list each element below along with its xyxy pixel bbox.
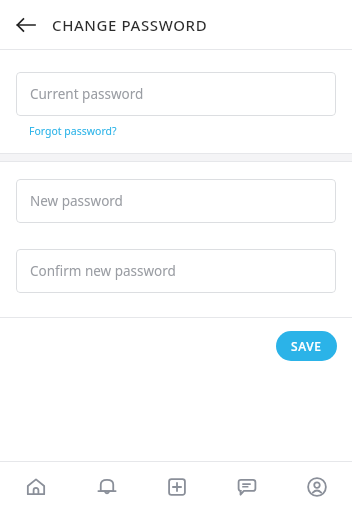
button[interactable]: Create [142,462,212,512]
staticText: New password [30,192,123,210]
button[interactable]: Confirm new password [16,249,336,293]
button[interactable]: Messages [212,462,282,512]
button[interactable]: Forgot password? [28,123,118,139]
button[interactable]: Notifications [71,462,142,512]
button[interactable]: Home [0,462,71,512]
staticText: Forgot password? [29,124,117,138]
button[interactable]: SAVE [276,331,337,361]
button[interactable]: Current password [16,72,336,116]
button[interactable]: Back [10,9,42,41]
staticText: CHANGE PASSWORD [52,15,208,35]
button[interactable]: New password [16,179,336,223]
staticText: Confirm new password [30,262,176,280]
staticText: Current password [30,85,144,103]
staticText: SAVE [291,338,322,354]
button[interactable]: Profile [282,462,352,512]
